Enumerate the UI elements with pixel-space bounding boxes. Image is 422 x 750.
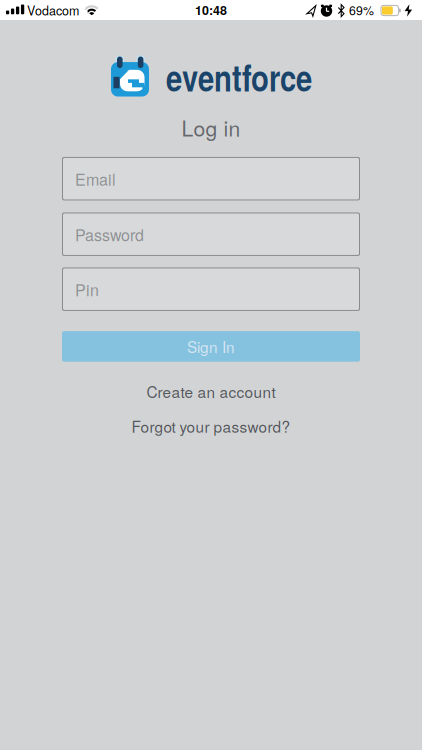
staticText: Create an account xyxy=(146,380,275,402)
button[interactable]: Sign In xyxy=(62,331,360,362)
staticText: Email xyxy=(75,167,116,190)
staticText: Pin xyxy=(75,278,99,301)
staticText: 69% xyxy=(349,1,374,19)
secureTextField[interactable]: Password xyxy=(62,212,360,256)
staticText: Log in xyxy=(181,112,240,143)
button[interactable]: Create an account xyxy=(146,380,275,402)
staticText: eventforce xyxy=(166,55,312,97)
staticText: Vodacom xyxy=(27,1,79,19)
staticText: Password xyxy=(75,223,144,246)
textField[interactable]: Pin xyxy=(62,267,360,311)
staticText: Sign In xyxy=(187,335,235,357)
textField[interactable]: Email xyxy=(62,157,360,200)
staticText: 10:48 xyxy=(195,1,227,19)
staticText: Forgot your password? xyxy=(131,415,290,437)
button[interactable]: Forgot your password? xyxy=(131,415,290,437)
